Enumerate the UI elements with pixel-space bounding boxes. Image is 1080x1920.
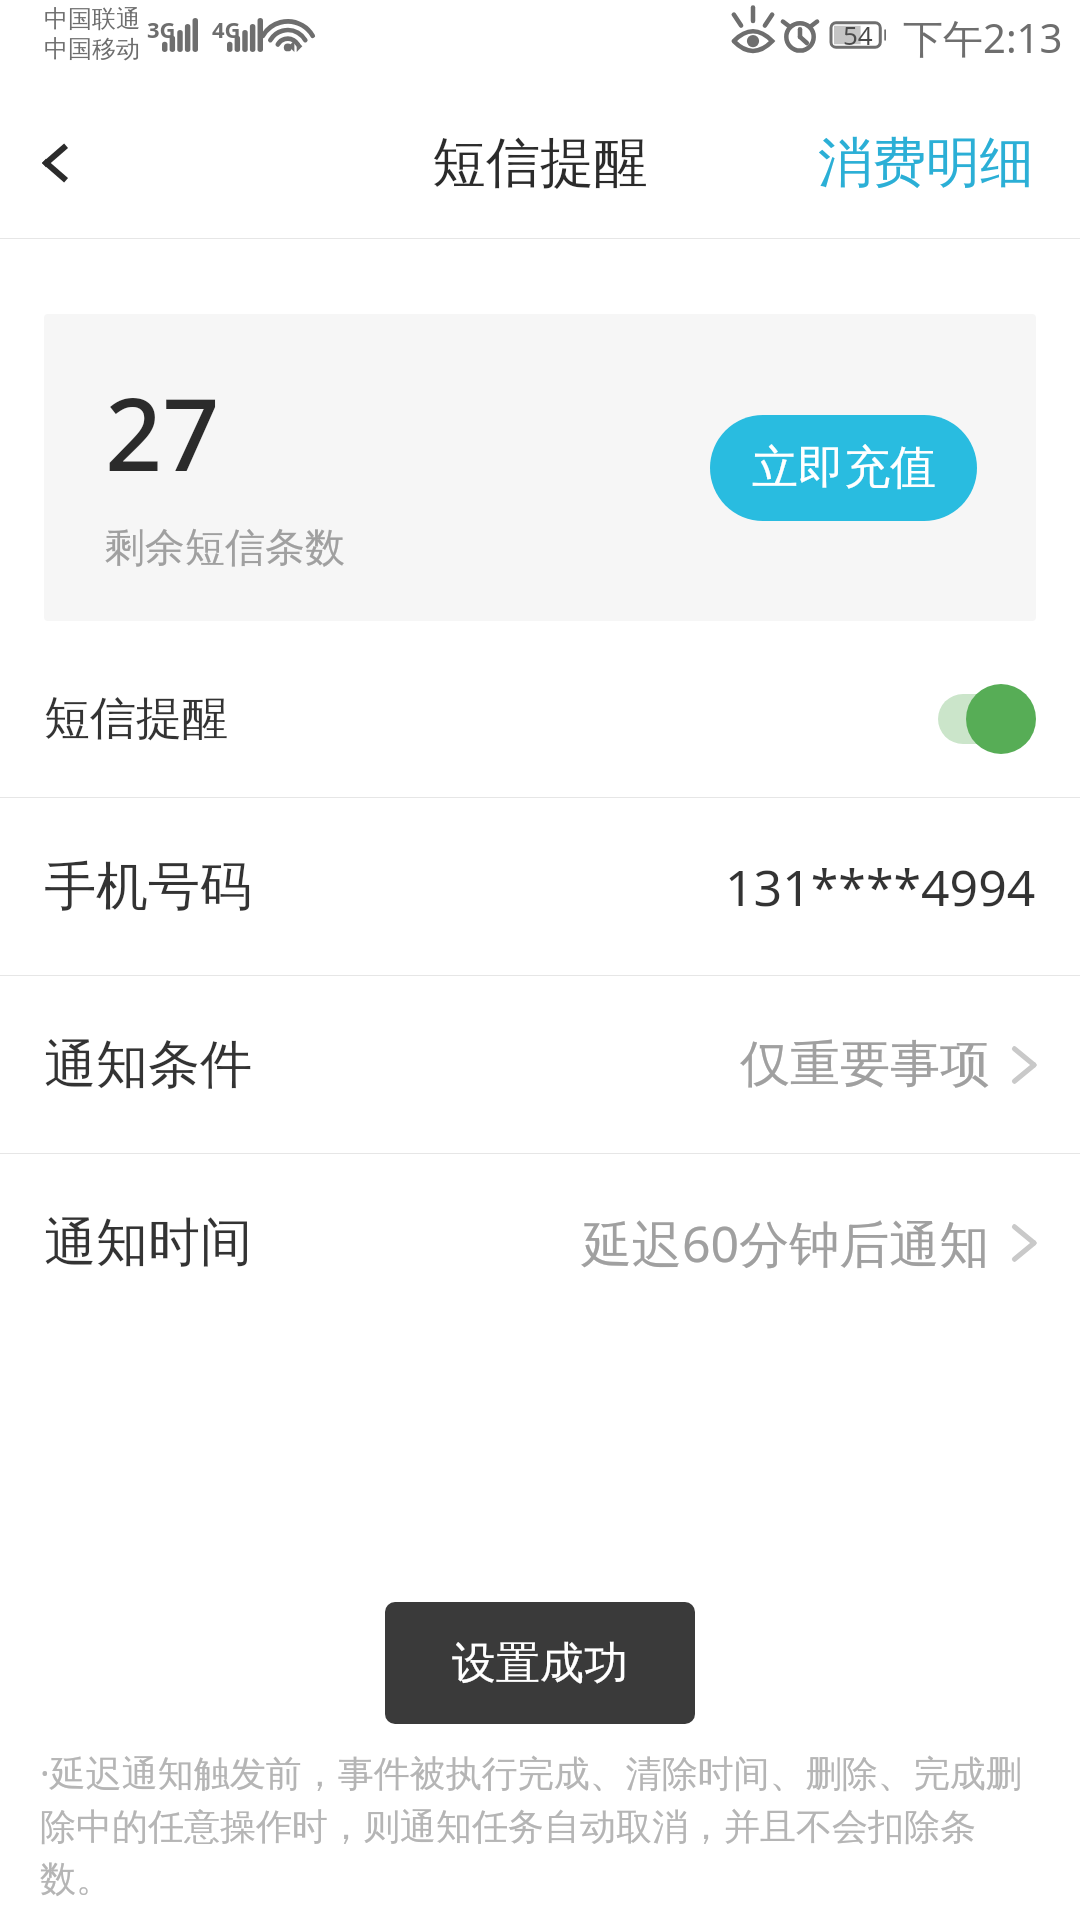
staticText: 短信提醒 (44, 690, 228, 748)
button[interactable]: 通知条件 (0, 976, 1080, 1153)
staticText: 27 (105, 364, 220, 500)
staticText: 手机号码 (44, 854, 252, 920)
staticText: 中国联通 (44, 4, 140, 34)
staticText: 短信提醒 (432, 129, 648, 197)
staticText: 通知条件 (44, 1032, 252, 1098)
staticText: 中国移动 (44, 34, 140, 64)
staticText: 消费明细 (818, 129, 1034, 197)
staticText: 54 (843, 17, 873, 51)
staticText: 延迟60分钟后通知 (582, 1209, 990, 1277)
staticText: 设置成功 (452, 1636, 628, 1691)
button[interactable]: 通知时间 (0, 1154, 1080, 1331)
staticText: 通知时间 (44, 1210, 252, 1276)
staticText: 4G (212, 14, 241, 44)
staticText: 仅重要事项 (740, 1033, 990, 1096)
staticText: 3G (147, 14, 176, 44)
button[interactable]: 手机号码 (0, 798, 1080, 975)
staticText: ·延迟通知触发前，事件被执行完成、清除时间、删除、完成删除中的任意操作时，则通知… (40, 1748, 1040, 1902)
staticText: 下午2:13 (903, 10, 1063, 65)
staticText: 剩余短信条数 (105, 522, 345, 572)
button[interactable]: 消费明细 (818, 129, 1034, 197)
button[interactable]: 立即充值 (710, 415, 977, 521)
button[interactable]: 短信提醒 (0, 641, 1080, 797)
staticText: 立即充值 (752, 439, 936, 497)
button[interactable]: Back (0, 108, 110, 218)
staticText: 131****4994 (725, 853, 1036, 921)
